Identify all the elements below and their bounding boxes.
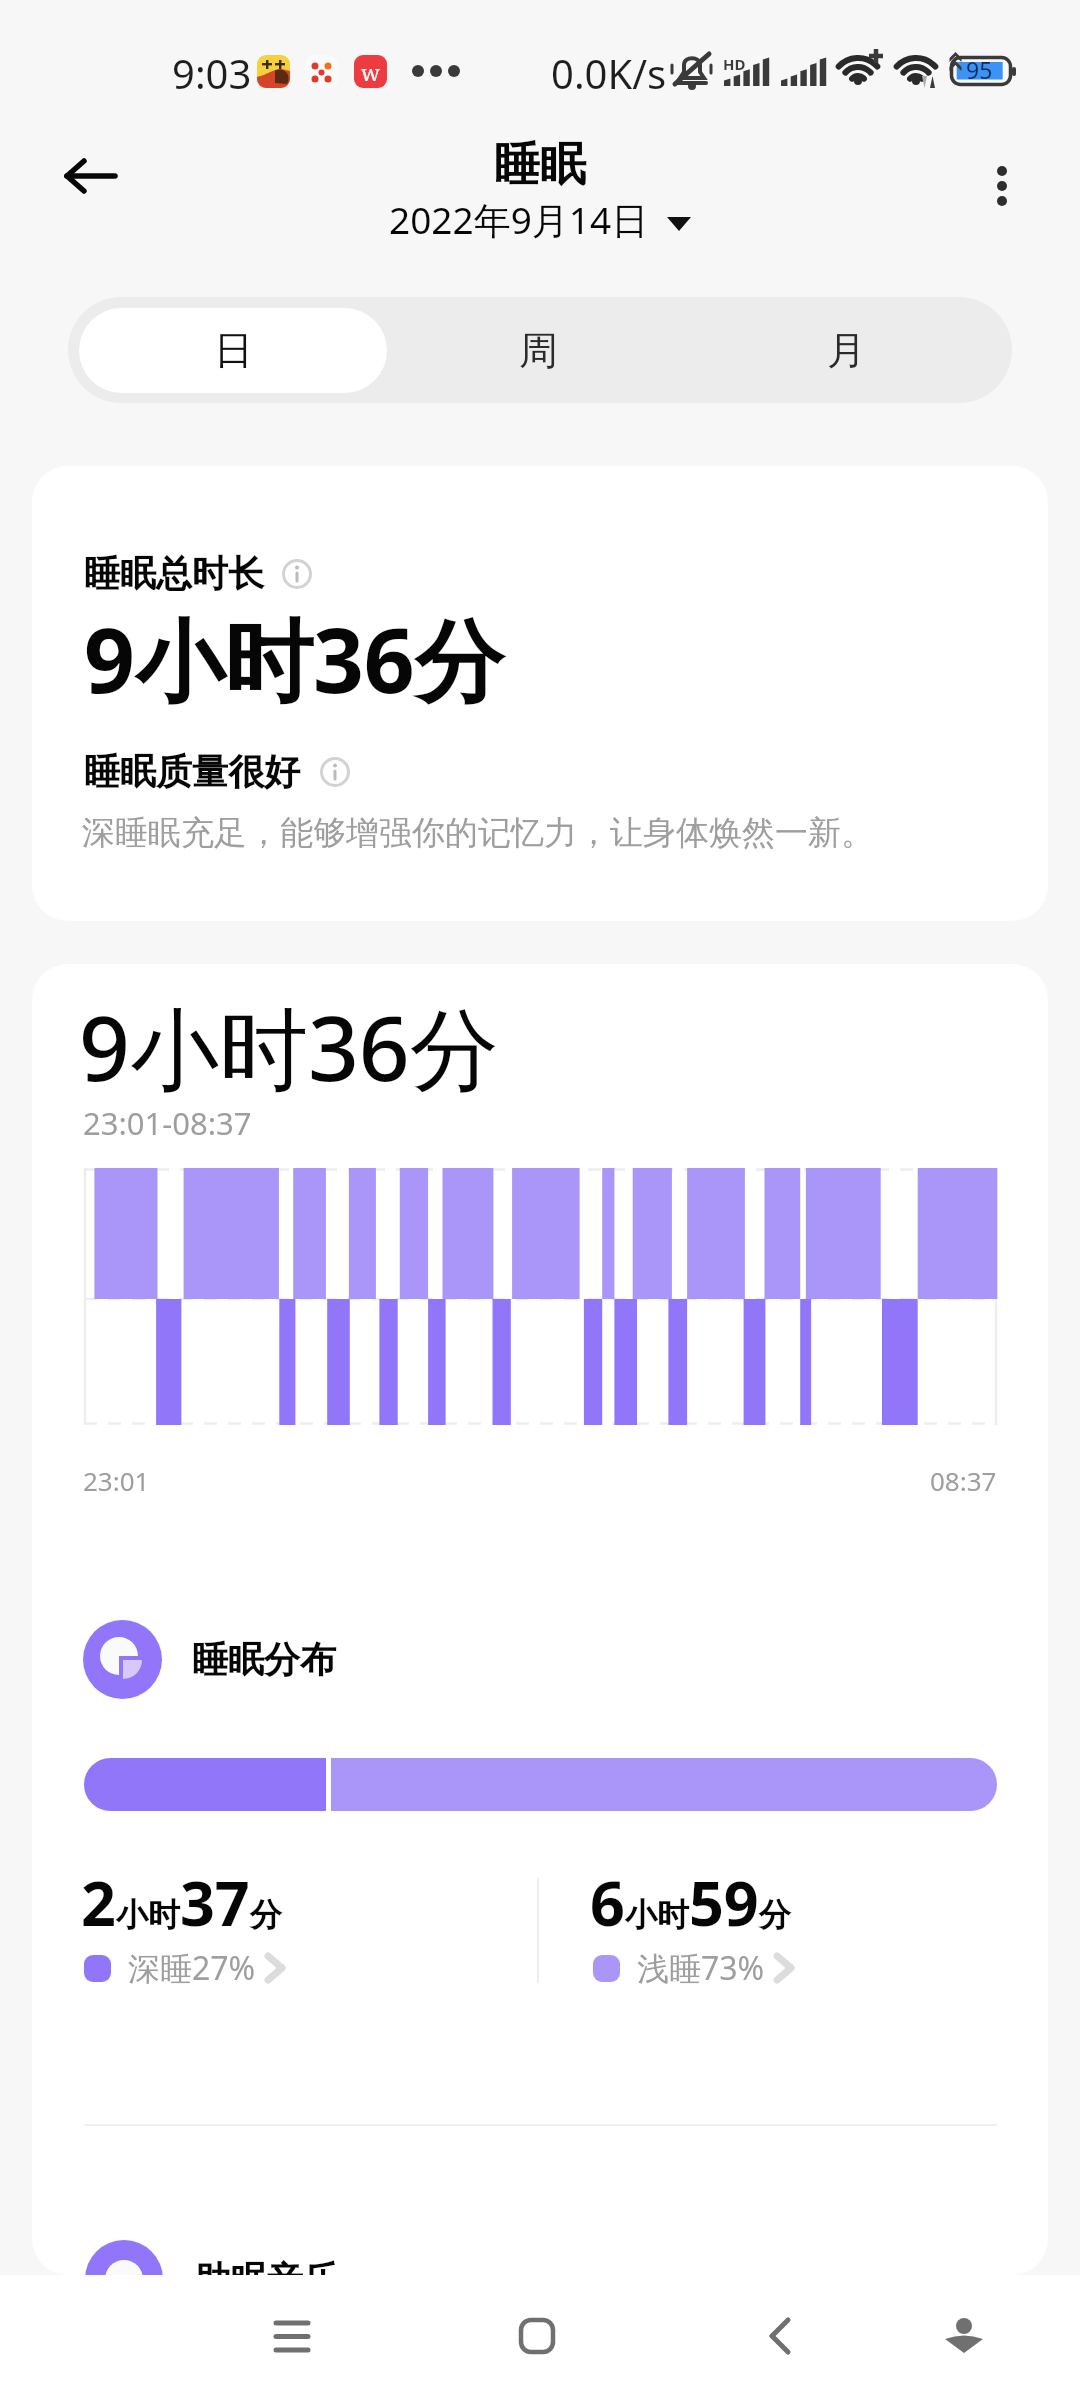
button[interactable]: Back	[724, 2280, 836, 2392]
button[interactable]: Assistant	[908, 2280, 1020, 2392]
staticText: 2022年9月14日	[389, 194, 649, 245]
staticText: 深睡眠充足，能够增强你的记忆力，让身体焕然一新。	[82, 812, 874, 854]
staticText: 睡眠分布	[192, 1637, 336, 1682]
staticText: 周	[519, 326, 558, 375]
staticText: 睡眠总时长	[84, 551, 264, 596]
button[interactable]: 睡眠质量很好	[84, 749, 350, 794]
staticText: 9:03	[172, 46, 252, 100]
staticText: 9小时36分	[84, 598, 504, 720]
staticText: 浅睡73%	[637, 1946, 765, 1990]
button[interactable]: 周	[388, 297, 689, 403]
button[interactable]: 月	[696, 297, 997, 403]
button[interactable]: Recents	[236, 2280, 348, 2392]
button[interactable]: 日	[79, 308, 387, 393]
button[interactable]: 助眠音乐	[85, 2240, 337, 2318]
staticText: 9小时36分	[79, 986, 499, 1108]
staticText: 23:01	[83, 1463, 150, 1498]
button[interactable]: Home	[481, 2280, 593, 2392]
staticText: 睡眠	[494, 136, 586, 194]
button[interactable]: 睡眠总时长	[84, 551, 312, 596]
staticText: 2小时37分	[81, 1861, 282, 1944]
button[interactable]: 2022年9月14日	[389, 194, 691, 245]
staticText: 0.0K/s	[551, 46, 667, 100]
button[interactable]: 睡眠分布	[83, 1620, 336, 1699]
button[interactable]: 6小时59分	[590, 1861, 792, 1990]
staticText: 月	[827, 326, 866, 375]
staticText: 深睡27%	[128, 1946, 256, 1990]
button[interactable]: 2小时37分	[81, 1861, 283, 1990]
staticText: 95	[966, 54, 993, 85]
button[interactable]: Back	[56, 141, 126, 211]
staticText: HD	[723, 54, 746, 74]
staticText: 日	[214, 326, 253, 375]
staticText: w	[361, 57, 380, 87]
staticText: 助眠音乐	[195, 2257, 339, 2302]
staticText: 6小时59分	[590, 1861, 791, 1944]
button[interactable]: More options	[967, 151, 1037, 221]
staticText: 08:37	[930, 1463, 997, 1498]
staticText: 睡眠质量很好	[84, 749, 300, 794]
staticText: 23:01-08:37	[83, 1102, 252, 1144]
